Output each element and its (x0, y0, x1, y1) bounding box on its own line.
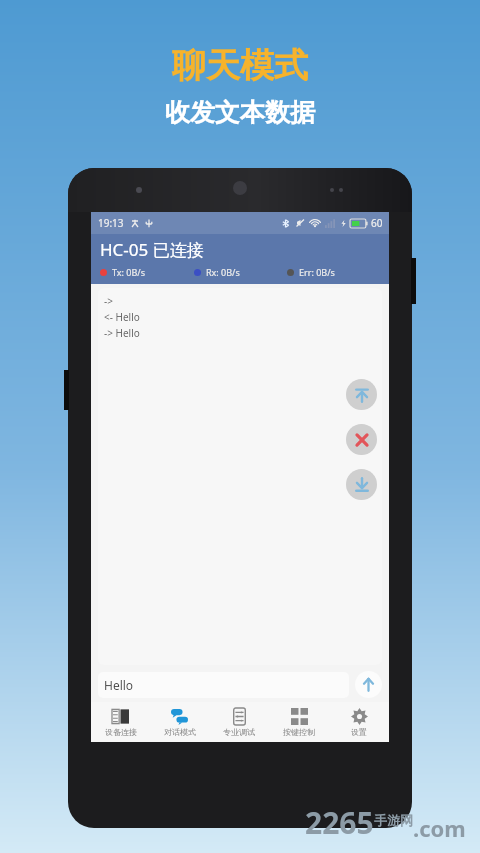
staticText: 收发文本数据 (165, 97, 315, 128)
button[interactable]: Scroll to bottom (346, 469, 377, 500)
staticText: -> (104, 294, 113, 308)
button[interactable]: 设置 (329, 702, 389, 742)
staticText: -> Hello (104, 326, 140, 340)
staticText: HC-05 已连接 (100, 238, 204, 261)
staticText: 19:13 (98, 216, 124, 230)
staticText: 专业调试 (223, 727, 255, 737)
button[interactable]: 对话模式 (150, 702, 209, 742)
button[interactable]: Clear log (346, 424, 377, 455)
staticText: 60 (371, 216, 383, 230)
button[interactable]: Scroll to top (346, 379, 377, 410)
staticText: 聊天模式 (172, 44, 308, 87)
staticText: Err: 0B/s (299, 266, 335, 278)
staticText: 2265 (305, 802, 374, 843)
button[interactable]: 专业调试 (209, 702, 269, 742)
staticText: 对话模式 (164, 727, 196, 737)
staticText: 设备连接 (105, 727, 137, 737)
staticText: Rx: 0B/s (206, 266, 240, 278)
staticText: <- Hello (104, 310, 140, 324)
button[interactable]: 按键控制 (269, 702, 329, 742)
staticText: 手游网 (374, 812, 413, 828)
button[interactable]: Hello (98, 672, 349, 698)
button[interactable]: 设备连接 (91, 702, 150, 742)
staticText: Tx: 0B/s (112, 266, 145, 278)
staticText: .com (413, 813, 466, 843)
staticText: Hello (104, 677, 134, 693)
button[interactable]: Send (355, 671, 382, 698)
staticText: 设置 (351, 727, 367, 737)
staticText: 按键控制 (283, 727, 315, 737)
